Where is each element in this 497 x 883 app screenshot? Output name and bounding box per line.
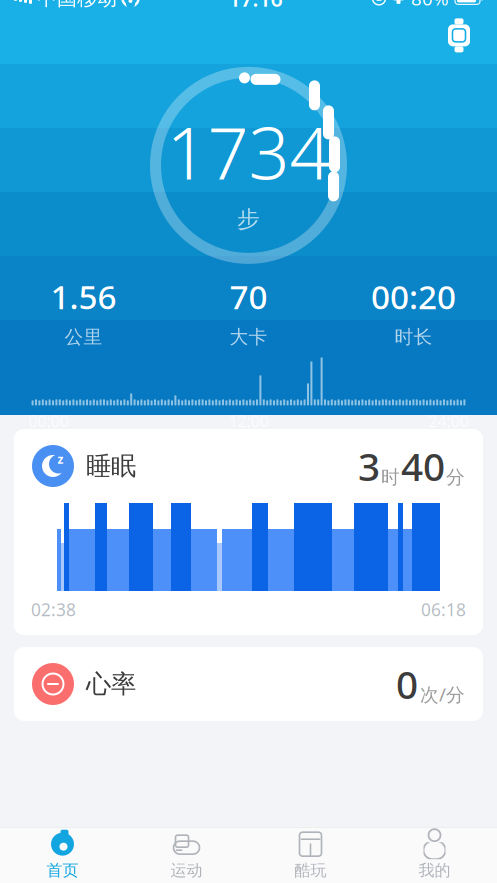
staticText: 中国移动 (37, 0, 117, 11)
button[interactable]: 心率 (14, 647, 483, 721)
staticText: 80% (411, 0, 449, 11)
staticText: 大卡 (229, 325, 267, 348)
staticText: 分 (446, 466, 465, 489)
staticText: 3 (358, 440, 380, 492)
staticText: 运动 (170, 861, 202, 880)
staticText: 次/分 (420, 682, 465, 707)
staticText: 步 (237, 205, 260, 233)
staticText: 心率 (86, 668, 136, 700)
staticText: 0 (396, 658, 418, 710)
staticText: 40 (401, 440, 445, 492)
staticText: 00:00 (28, 410, 68, 432)
staticText: 首页 (46, 861, 78, 880)
staticText: 公里 (64, 325, 102, 348)
button[interactable]: 首页 (0, 828, 124, 883)
staticText: 24:00 (428, 410, 468, 432)
button[interactable]: 酷玩 (248, 828, 372, 883)
staticText: 12:00 (228, 410, 268, 432)
staticText: 02:38 (31, 598, 76, 621)
staticText: 70 (229, 274, 267, 319)
staticText: z (57, 451, 63, 467)
button[interactable]: 我的设备 (439, 15, 479, 55)
staticText: 1.56 (50, 274, 116, 319)
button[interactable]: z (14, 429, 483, 635)
button[interactable]: 运动 (124, 828, 248, 883)
staticText: 酷玩 (294, 861, 326, 880)
staticText: 睡眠 (86, 450, 136, 481)
staticText: 时长 (394, 325, 432, 348)
staticText: 00:20 (371, 274, 456, 319)
staticText: 时 (381, 466, 400, 489)
button[interactable]: 我的 (372, 828, 496, 883)
staticText: 1734 (166, 104, 330, 199)
staticText: 我的 (418, 861, 450, 880)
staticText: 17:16 (228, 0, 282, 12)
staticText: 06:18 (421, 598, 466, 621)
